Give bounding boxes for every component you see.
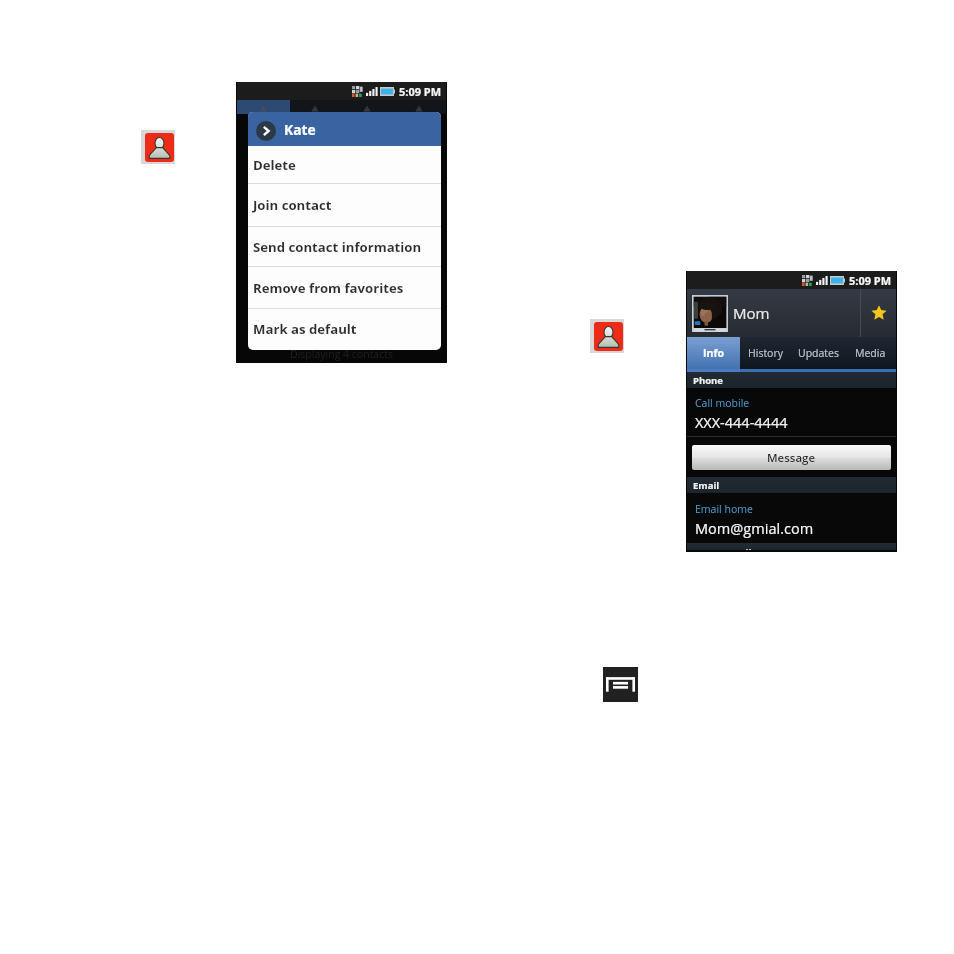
button[interactable]: Join contact: [248, 184, 441, 226]
staticText: Email home: [695, 502, 753, 516]
button[interactable]: Contacts: [590, 319, 624, 353]
staticText: Internet call: [693, 546, 752, 550]
button[interactable]: Kate: [248, 112, 441, 146]
staticText: 5:09 PM: [399, 84, 442, 99]
staticText: Call mobile: [695, 396, 750, 410]
button[interactable]: Send contact information: [248, 227, 441, 266]
staticText: Mark as default: [253, 320, 357, 338]
staticText: Phone: [693, 374, 723, 387]
button[interactable]: History: [740, 337, 792, 372]
staticText: Mom@gmial.com: [695, 519, 814, 539]
button[interactable]: Call mobile: [687, 388, 896, 436]
button[interactable]: Message: [692, 445, 891, 470]
staticText: 5:09 PM: [849, 273, 892, 288]
staticText: Delete: [253, 156, 296, 174]
button[interactable]: Media: [844, 337, 896, 372]
staticText: Kate: [284, 120, 316, 139]
button[interactable]: Mom: [687, 289, 896, 337]
button[interactable]: Info: [687, 337, 740, 372]
staticText: Remove from favorites: [253, 279, 404, 297]
button[interactable]: Email home: [687, 493, 896, 543]
staticText: Media: [855, 346, 886, 360]
staticText: XXX-444-4444: [695, 413, 788, 433]
staticText: Displaying 4 contacts: [290, 347, 393, 361]
button[interactable]: Updates: [792, 337, 844, 372]
button[interactable]: Menu key: [603, 667, 638, 702]
staticText: Message: [767, 450, 816, 466]
staticText: Send contact information: [253, 238, 422, 256]
staticText: Join contact: [253, 196, 332, 214]
staticText: History: [748, 346, 784, 360]
button[interactable]: Remove from favorites: [248, 267, 441, 308]
button[interactable]: Contacts: [141, 130, 175, 164]
button[interactable]: Mark as default: [248, 309, 441, 349]
staticText: Mom: [733, 303, 770, 323]
button[interactable]: Delete: [248, 146, 441, 183]
staticText: Info: [703, 346, 724, 360]
button[interactable]: Favorite: [861, 289, 896, 337]
staticText: Updates: [798, 346, 839, 360]
staticText: Email: [693, 479, 720, 492]
